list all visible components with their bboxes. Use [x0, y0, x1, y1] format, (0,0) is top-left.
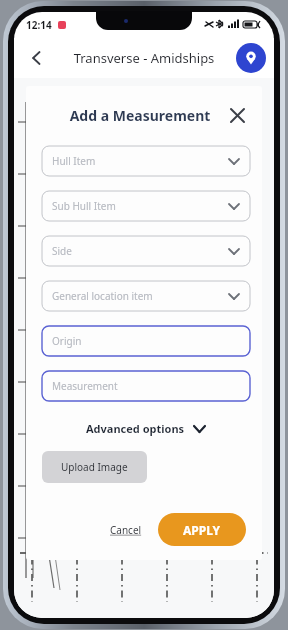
staticText: Origin [52, 334, 240, 348]
button[interactable]: Location [236, 43, 266, 73]
button[interactable]: Cancel [104, 517, 148, 543]
staticText: Sub Hull Item [52, 199, 228, 213]
staticText: Side [52, 244, 228, 258]
staticText: Transverse - Amidships [52, 49, 236, 67]
staticText: Hull Item [52, 154, 228, 168]
button[interactable]: General location item [42, 281, 250, 311]
button[interactable]: Measurement [42, 371, 250, 401]
button[interactable]: Side [42, 236, 250, 266]
button[interactable]: Advanced options [86, 421, 206, 436]
button[interactable]: Upload Image [42, 451, 147, 483]
staticText: Advanced options [86, 421, 185, 436]
staticText: General location item [52, 289, 228, 303]
staticText: Cancel [110, 523, 142, 537]
staticText: Add a Measurement [56, 106, 224, 125]
staticText: Upload Image [61, 460, 128, 474]
button[interactable]: APPLY [158, 513, 246, 546]
button[interactable]: Hull Item [42, 146, 250, 176]
staticText: APPLY [183, 522, 221, 538]
staticText: 12:14 [26, 18, 52, 32]
button[interactable]: Close [224, 102, 250, 128]
button[interactable]: Back [22, 43, 52, 73]
button[interactable]: Sub Hull Item [42, 191, 250, 221]
staticText: Measurement [52, 379, 240, 393]
button[interactable]: Origin [42, 326, 250, 356]
